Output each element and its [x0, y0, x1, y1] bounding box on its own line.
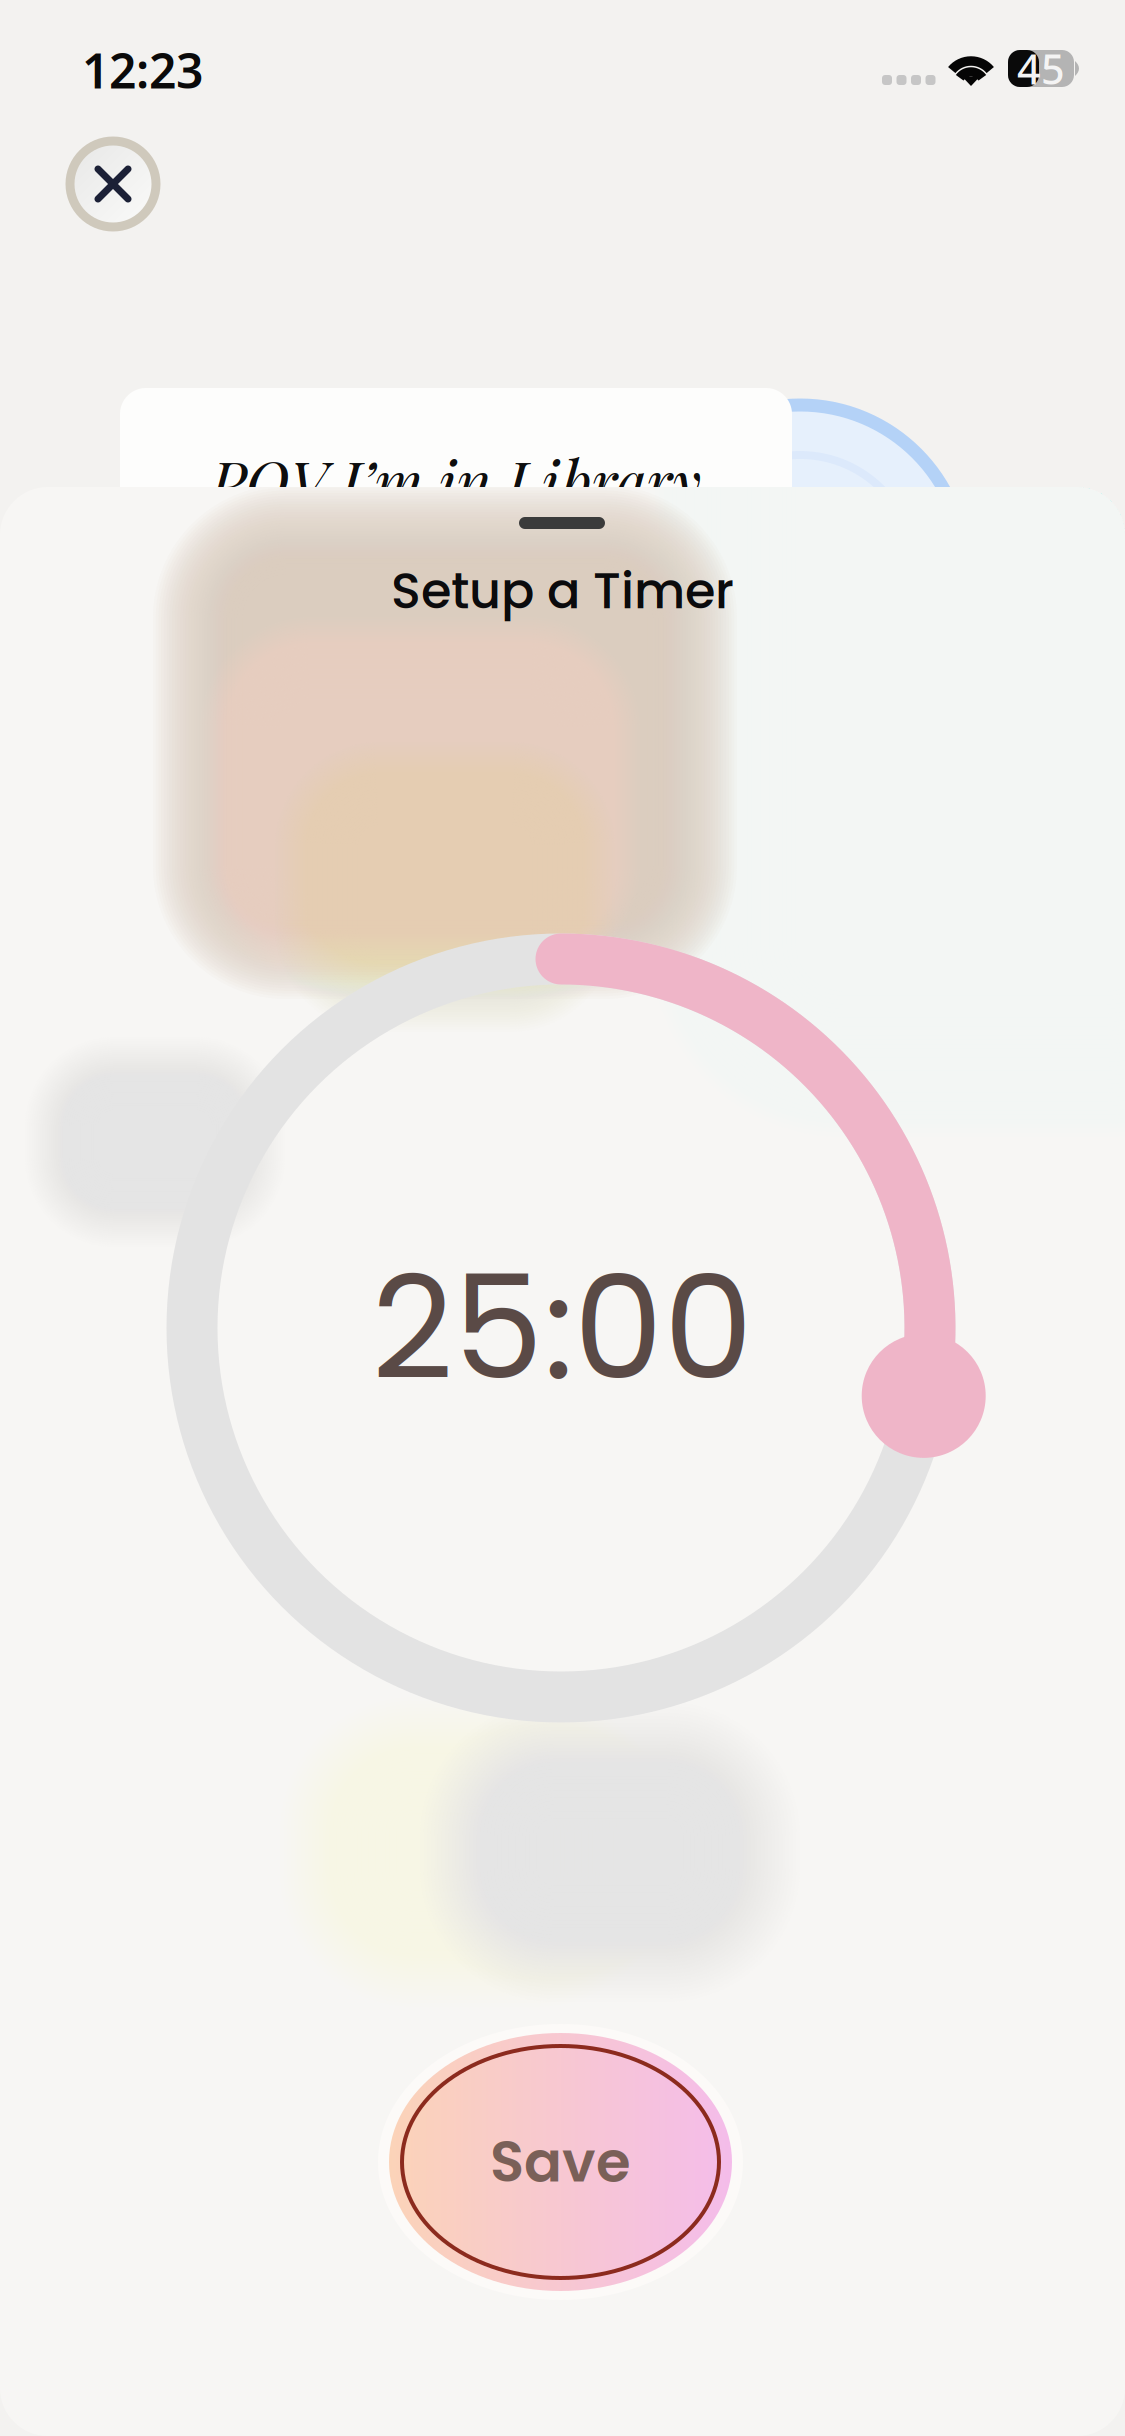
button[interactable]: Close: [70, 141, 156, 227]
staticText: Setup a Timer: [391, 556, 734, 626]
button[interactable]: Save: [378, 2024, 743, 2300]
staticText: Save: [490, 2123, 631, 2201]
staticText: 12:23: [82, 38, 203, 102]
staticText: POV I’m in Library: [210, 440, 701, 520]
staticText: 45: [1017, 41, 1065, 96]
staticText: 25:00: [371, 1228, 753, 1428]
